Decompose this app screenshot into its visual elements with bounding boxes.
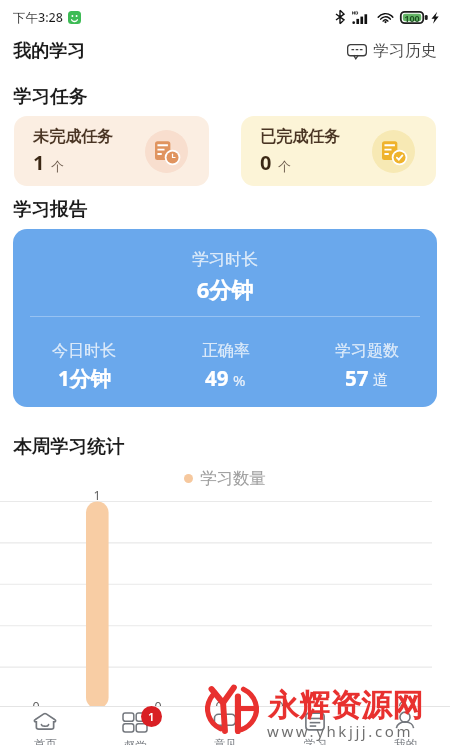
staticText: 0	[209, 698, 229, 715]
button[interactable]: 已完成任务	[241, 116, 436, 186]
staticText: 个	[51, 158, 64, 174]
staticText: 0	[260, 149, 272, 176]
staticText: 今日时长	[52, 341, 116, 361]
staticText: 1	[87, 487, 107, 504]
staticText: 1分钟	[58, 364, 111, 392]
staticText: 我的	[394, 737, 417, 745]
button[interactable]: 学习	[270, 706, 360, 745]
staticText: 0	[392, 698, 412, 715]
button[interactable]: 首页	[0, 706, 90, 745]
staticText: 督学	[124, 739, 147, 745]
staticText: 0	[26, 698, 46, 715]
staticText: 0	[331, 698, 351, 715]
staticText: 学习报告	[13, 198, 87, 221]
staticText: 下午3:28	[13, 9, 63, 26]
button[interactable]: 未完成任务	[14, 116, 209, 186]
staticText: %	[233, 370, 246, 390]
staticText: 49	[205, 364, 229, 392]
staticText: 首页	[34, 737, 57, 745]
staticText: 已完成任务	[260, 127, 340, 147]
staticText: 学习数量	[200, 468, 266, 489]
staticText: 学习时长	[13, 249, 437, 270]
staticText: 个	[278, 158, 291, 174]
staticText: 100	[400, 12, 424, 24]
button[interactable]: 我的	[360, 706, 450, 745]
staticText: 57	[345, 364, 369, 392]
button[interactable]: 学习历史	[343, 38, 441, 64]
staticText: 道	[373, 371, 388, 390]
staticText: 未完成任务	[33, 127, 113, 147]
staticText: 本周学习统计	[13, 435, 124, 458]
button[interactable]: 学习时长	[13, 229, 437, 407]
staticText: 1	[33, 149, 45, 176]
button[interactable]: 意见	[180, 706, 270, 745]
staticText: 学习历史	[373, 41, 437, 61]
staticText: 意见	[214, 737, 237, 745]
staticText: 正确率	[202, 341, 250, 361]
staticText: 学习任务	[13, 85, 87, 108]
staticText: 6分钟	[13, 274, 437, 304]
staticText: 永辉资源网	[268, 686, 423, 725]
staticText: 学习	[304, 737, 327, 745]
staticText: 学习题数	[335, 341, 399, 361]
staticText: 我的学习	[13, 40, 85, 63]
staticText: www.yhkjjj.com	[267, 721, 414, 741]
staticText: 0	[270, 698, 290, 715]
staticText: 1	[148, 709, 155, 725]
button[interactable]: 1	[90, 706, 180, 745]
staticText: 0	[148, 698, 168, 715]
